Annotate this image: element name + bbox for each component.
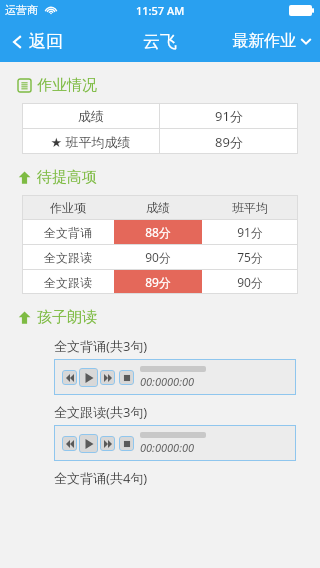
staticText: 75分 [237, 249, 263, 265]
staticText: 11:57 AM [136, 3, 185, 18]
button[interactable]: 返回 [10, 31, 63, 52]
staticText: 作业情况 [37, 76, 97, 95]
staticText: 89分 [215, 133, 243, 151]
staticText: 全文跟读 [44, 250, 92, 265]
staticText: 全文背诵 [44, 225, 92, 240]
button[interactable]: Stop [119, 370, 134, 385]
staticText: 最新作业 [232, 31, 296, 51]
staticText: 00:0000:00 [140, 374, 195, 389]
staticText: 云飞 [143, 31, 177, 52]
button[interactable]: Play [79, 434, 98, 453]
button[interactable]: Play [79, 368, 98, 387]
button[interactable]: Stop [119, 436, 134, 451]
staticText: 全文跟读 [44, 275, 92, 290]
button[interactable]: Audio player [54, 359, 296, 395]
staticText: 返回 [29, 31, 63, 52]
staticText: 90分 [145, 249, 171, 265]
staticText: 孩子朗读 [37, 308, 97, 327]
button[interactable]: Rewind [62, 436, 77, 451]
staticText: 作业项 [50, 200, 86, 215]
staticText: 全文背诵(共4句) [54, 469, 148, 487]
staticText: 班平均 [232, 200, 268, 215]
button[interactable]: Audio player [54, 425, 296, 461]
staticText: 待提高项 [37, 168, 97, 187]
staticText: 成绩 [78, 108, 104, 124]
button[interactable]: Rewind [62, 370, 77, 385]
staticText: 运营商 [5, 3, 38, 17]
staticText: 全文跟读(共3句) [54, 403, 148, 421]
button[interactable]: Forward [100, 436, 115, 451]
staticText: 全文背诵(共3句) [54, 337, 148, 355]
staticText: 91分 [237, 224, 263, 240]
button[interactable]: Forward [100, 370, 115, 385]
staticText: 89分 [145, 274, 171, 290]
staticText: 成绩 [146, 200, 170, 215]
staticText: ★ 班平均成绩 [50, 133, 131, 151]
button[interactable]: 最新作业 [232, 31, 312, 51]
staticText: 90分 [237, 274, 263, 290]
staticText: 91分 [215, 107, 243, 125]
staticText: 88分 [145, 224, 171, 240]
staticText: 00:0000:00 [140, 440, 195, 455]
